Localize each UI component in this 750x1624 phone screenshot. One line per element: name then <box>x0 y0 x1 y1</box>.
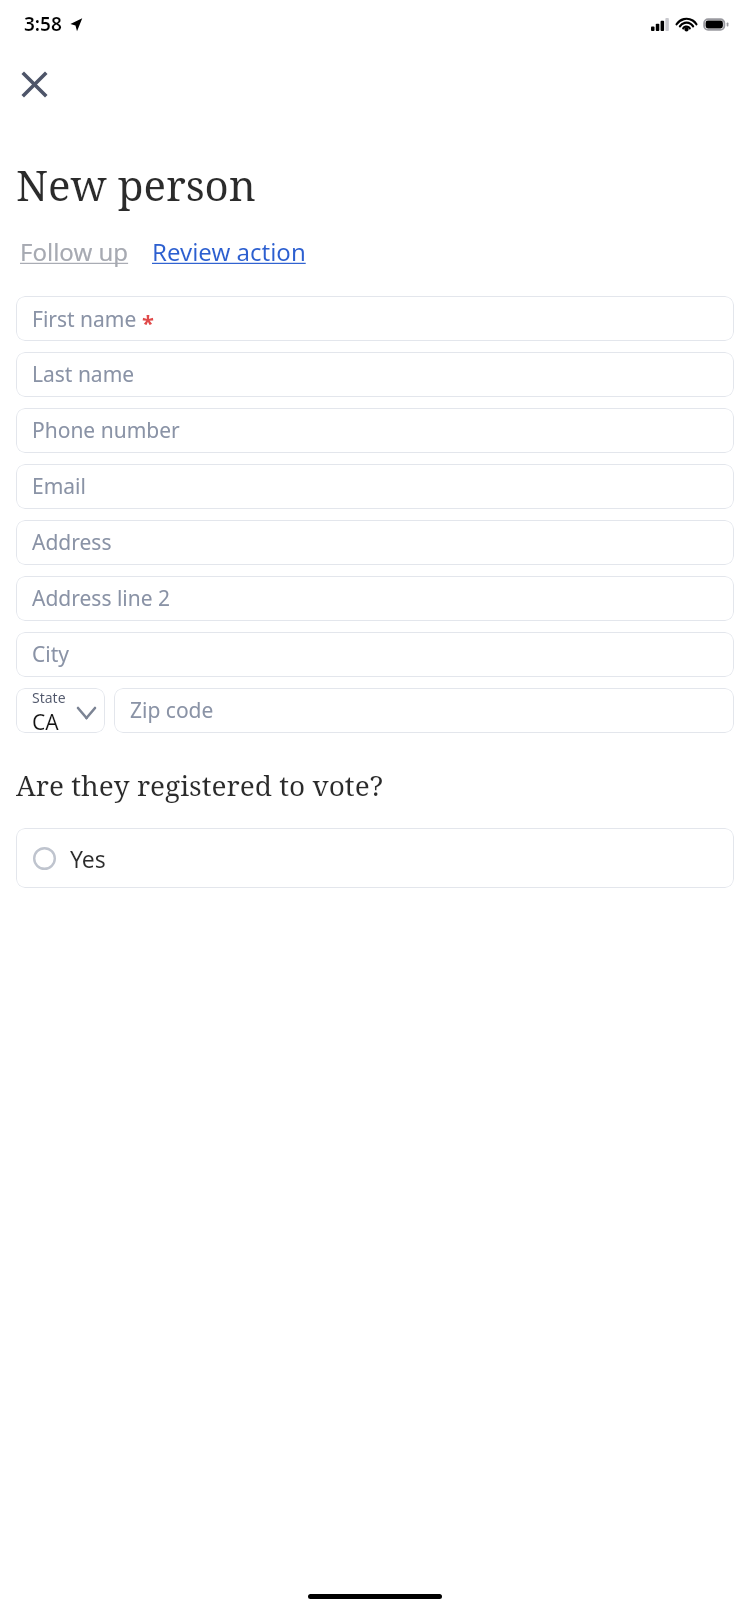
button[interactable]: State <box>16 688 105 733</box>
staticText: Review action <box>152 235 306 268</box>
staticText: 3:58 <box>24 11 62 37</box>
button[interactable]: Close <box>10 60 58 108</box>
staticText: Follow up <box>20 235 129 268</box>
staticText: State <box>32 688 66 707</box>
button[interactable]: Yes <box>16 828 734 888</box>
button[interactable]: Address line 2 <box>16 576 734 621</box>
staticText: Address <box>32 528 112 557</box>
button[interactable]: Review action <box>150 233 308 270</box>
button[interactable]: Zip code <box>114 688 734 733</box>
button[interactable]: Follow up <box>18 233 131 270</box>
staticText: Address line 2 <box>32 584 171 613</box>
button[interactable]: Email <box>16 464 734 509</box>
staticText: New person <box>16 156 256 213</box>
staticText: Last name <box>32 360 135 389</box>
button[interactable]: Phone number <box>16 408 734 453</box>
staticText: CA <box>32 708 59 733</box>
staticText: Phone number <box>32 416 180 445</box>
button[interactable]: Last name <box>16 352 734 397</box>
staticText: City <box>32 640 69 669</box>
button[interactable]: Address <box>16 520 734 565</box>
staticText: Yes <box>70 843 106 874</box>
button[interactable]: First name <box>16 296 734 341</box>
staticText: First name <box>32 305 137 334</box>
staticText: Are they registered to vote? <box>16 766 383 804</box>
button[interactable]: City <box>16 632 734 677</box>
staticText: Email <box>32 472 86 501</box>
staticText: * <box>142 307 154 337</box>
staticText: Zip code <box>130 696 214 725</box>
